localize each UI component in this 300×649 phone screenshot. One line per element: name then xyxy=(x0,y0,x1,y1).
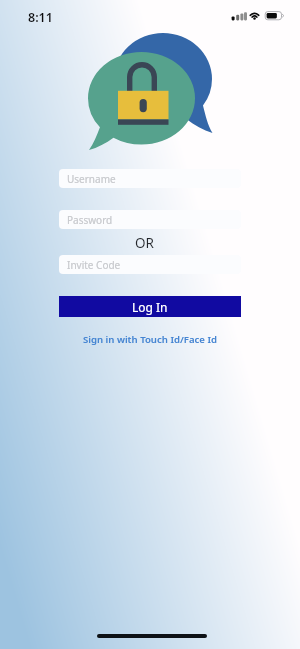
staticText: OR xyxy=(135,234,154,252)
staticText: Invite Code xyxy=(67,258,121,272)
button[interactable]: Password xyxy=(59,210,241,229)
button[interactable]: Log In xyxy=(59,296,241,317)
staticText: Sign in with Touch Id/Face Id xyxy=(83,333,218,346)
button[interactable]: Username xyxy=(59,169,241,188)
staticText: Log In xyxy=(132,299,168,315)
button[interactable]: Sign in with Touch Id/Face Id xyxy=(59,333,241,346)
staticText: 8:11 xyxy=(28,9,53,26)
staticText: Username xyxy=(67,172,116,186)
staticText: Password xyxy=(67,213,113,227)
button[interactable]: Invite Code xyxy=(59,255,241,274)
